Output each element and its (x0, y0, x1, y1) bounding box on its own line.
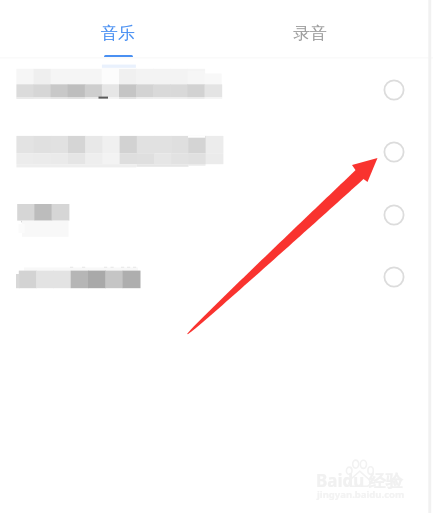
button[interactable]: Select item 2 (379, 137, 409, 167)
button[interactable]: Select item 4 (0, 245, 433, 307)
button[interactable]: 音乐 (22, 0, 214, 60)
button[interactable]: Select item 3 (0, 183, 433, 245)
button[interactable]: Select item 3 (379, 200, 409, 230)
button[interactable]: Select item 2 (0, 121, 433, 183)
staticText: 音乐 (101, 23, 135, 44)
button[interactable]: Select item 1 (0, 59, 433, 121)
button[interactable]: 录音 (214, 0, 406, 60)
button[interactable]: Select item 4 (379, 262, 409, 292)
staticText: 录音 (293, 23, 327, 44)
staticText: Baidu 经验 (316, 469, 403, 492)
staticText: jingyan.baidu.com (317, 488, 405, 501)
button[interactable]: Select item 1 (379, 75, 409, 105)
